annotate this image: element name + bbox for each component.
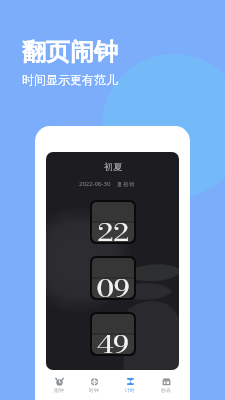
staticText: 秒表 xyxy=(161,387,171,393)
staticText: 时间显示更有范儿 xyxy=(22,72,118,87)
staticText: 49 xyxy=(96,326,129,354)
staticText: 夏 初 晴 xyxy=(117,181,135,188)
staticText: 2022-06-30 xyxy=(79,180,111,188)
button[interactable]: 22 xyxy=(92,202,134,242)
staticText: 计时 xyxy=(125,387,135,393)
button[interactable]: 49 xyxy=(92,314,134,354)
staticText: 22 xyxy=(98,214,129,242)
staticText: 翻页闹钟 xyxy=(22,37,118,67)
staticText: 初夏 xyxy=(104,161,122,172)
staticText: 时钟 xyxy=(89,387,99,393)
button[interactable]: 计时 xyxy=(112,370,148,400)
button[interactable]: 09 xyxy=(92,258,134,298)
button[interactable]: 时钟 xyxy=(76,370,112,400)
button[interactable]: 闹钟 xyxy=(41,370,76,400)
staticText: 09 xyxy=(96,270,131,298)
staticText: 闹钟 xyxy=(54,387,64,393)
button[interactable]: 秒表 xyxy=(148,370,184,400)
